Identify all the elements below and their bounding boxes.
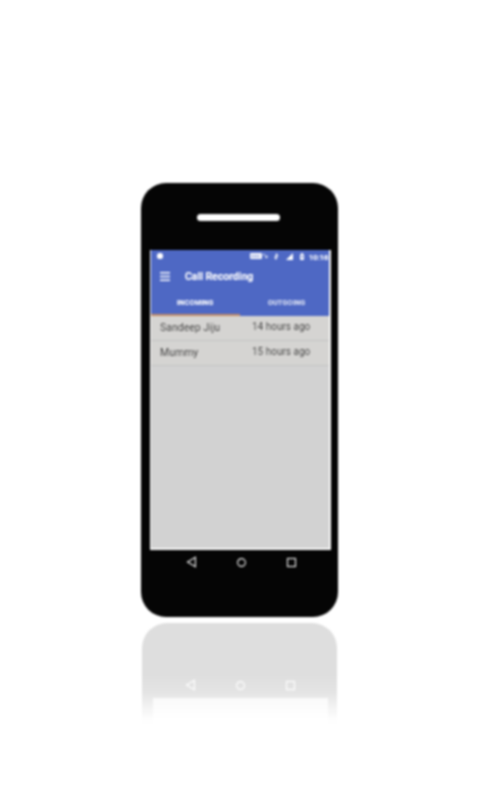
staticText: 15 hours ago	[252, 346, 311, 358]
button[interactable]: Back	[182, 553, 200, 571]
button[interactable]: OUTGOING	[240, 297, 329, 314]
staticText: Call Recording	[185, 270, 254, 282]
staticText: 10:16	[309, 253, 329, 262]
button[interactable]: Home	[231, 676, 249, 694]
staticText: Mummy	[160, 346, 199, 358]
button[interactable]: Open navigation drawer	[154, 265, 176, 287]
staticText: Sandeep Jiju	[160, 321, 220, 333]
staticText: 14 hours ago	[252, 321, 311, 333]
button[interactable]: INCOMING	[151, 297, 240, 314]
button[interactable]: Recent apps	[281, 676, 299, 694]
button[interactable]: Sandeep Jiju	[151, 316, 329, 340]
button[interactable]: Recent apps	[282, 553, 300, 571]
button[interactable]: Back	[181, 676, 199, 694]
button[interactable]: Home	[232, 553, 250, 571]
button[interactable]: Mummy	[151, 341, 329, 365]
staticText: INCOMING	[177, 299, 214, 307]
staticText: OUTGOING	[268, 299, 306, 307]
